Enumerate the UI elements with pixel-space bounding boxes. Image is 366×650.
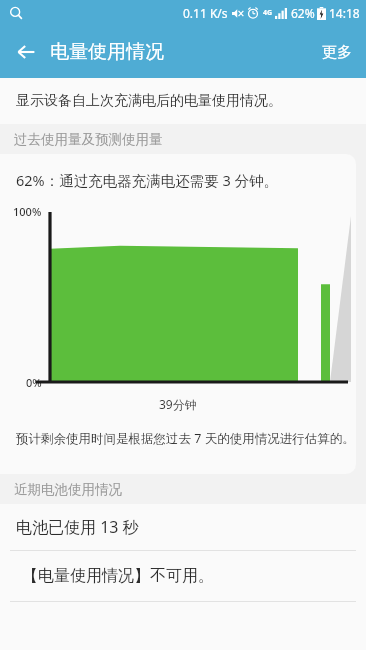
- button[interactable]: 电池已使用 13 秒: [0, 504, 366, 550]
- staticText: 39分钟: [159, 396, 197, 412]
- staticText: 0.11 K/s: [183, 5, 228, 21]
- staticText: 电量使用情况: [50, 40, 164, 64]
- button[interactable]: 更多: [308, 33, 366, 72]
- staticText: 62%: [291, 5, 315, 21]
- staticText: 62%：通过充电器充满电还需要 3 分钟。: [16, 170, 278, 190]
- staticText: 近期电池使用情况: [14, 481, 122, 498]
- staticText: 4G: [263, 8, 273, 18]
- staticText: 100%: [13, 204, 42, 219]
- button[interactable]: 【电量使用情况】不可用。: [0, 551, 366, 601]
- staticText: 预计剩余使用时间是根据您过去 7 天的使用情况进行估算的。: [16, 430, 355, 447]
- button[interactable]: 62%：通过充电器充满电还需要 3 分钟。: [0, 154, 356, 474]
- staticText: 显示设备自上次充满电后的电量使用情况。: [16, 92, 282, 110]
- button[interactable]: Back: [8, 34, 44, 70]
- staticText: 14:18: [329, 5, 360, 21]
- staticText: 0%: [26, 375, 42, 390]
- staticText: 更多: [322, 43, 352, 62]
- staticText: 【电量使用情况】不可用。: [22, 566, 214, 586]
- other: Search: [9, 6, 23, 20]
- staticText: 电池已使用 13 秒: [16, 516, 139, 538]
- staticText: 过去使用量及预测使用量: [14, 131, 163, 148]
